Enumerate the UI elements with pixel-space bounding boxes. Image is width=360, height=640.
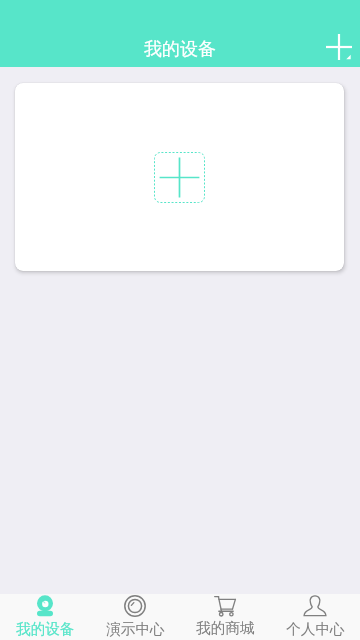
button[interactable]: Add device (319, 27, 359, 67)
staticText: 我的设备 (144, 38, 216, 61)
button[interactable]: 我的商城 (180, 594, 270, 640)
staticText: 个人中心 (286, 620, 345, 639)
button[interactable]: 个人中心 (270, 594, 360, 640)
button[interactable]: Add device (15, 83, 344, 271)
staticText: 演示中心 (106, 620, 165, 639)
button[interactable]: 我的设备 (0, 594, 90, 640)
button[interactable]: Add device (154, 152, 205, 203)
staticText: 我的设备 (16, 620, 75, 639)
button[interactable]: 演示中心 (90, 594, 180, 640)
staticText: 我的商城 (196, 619, 255, 638)
